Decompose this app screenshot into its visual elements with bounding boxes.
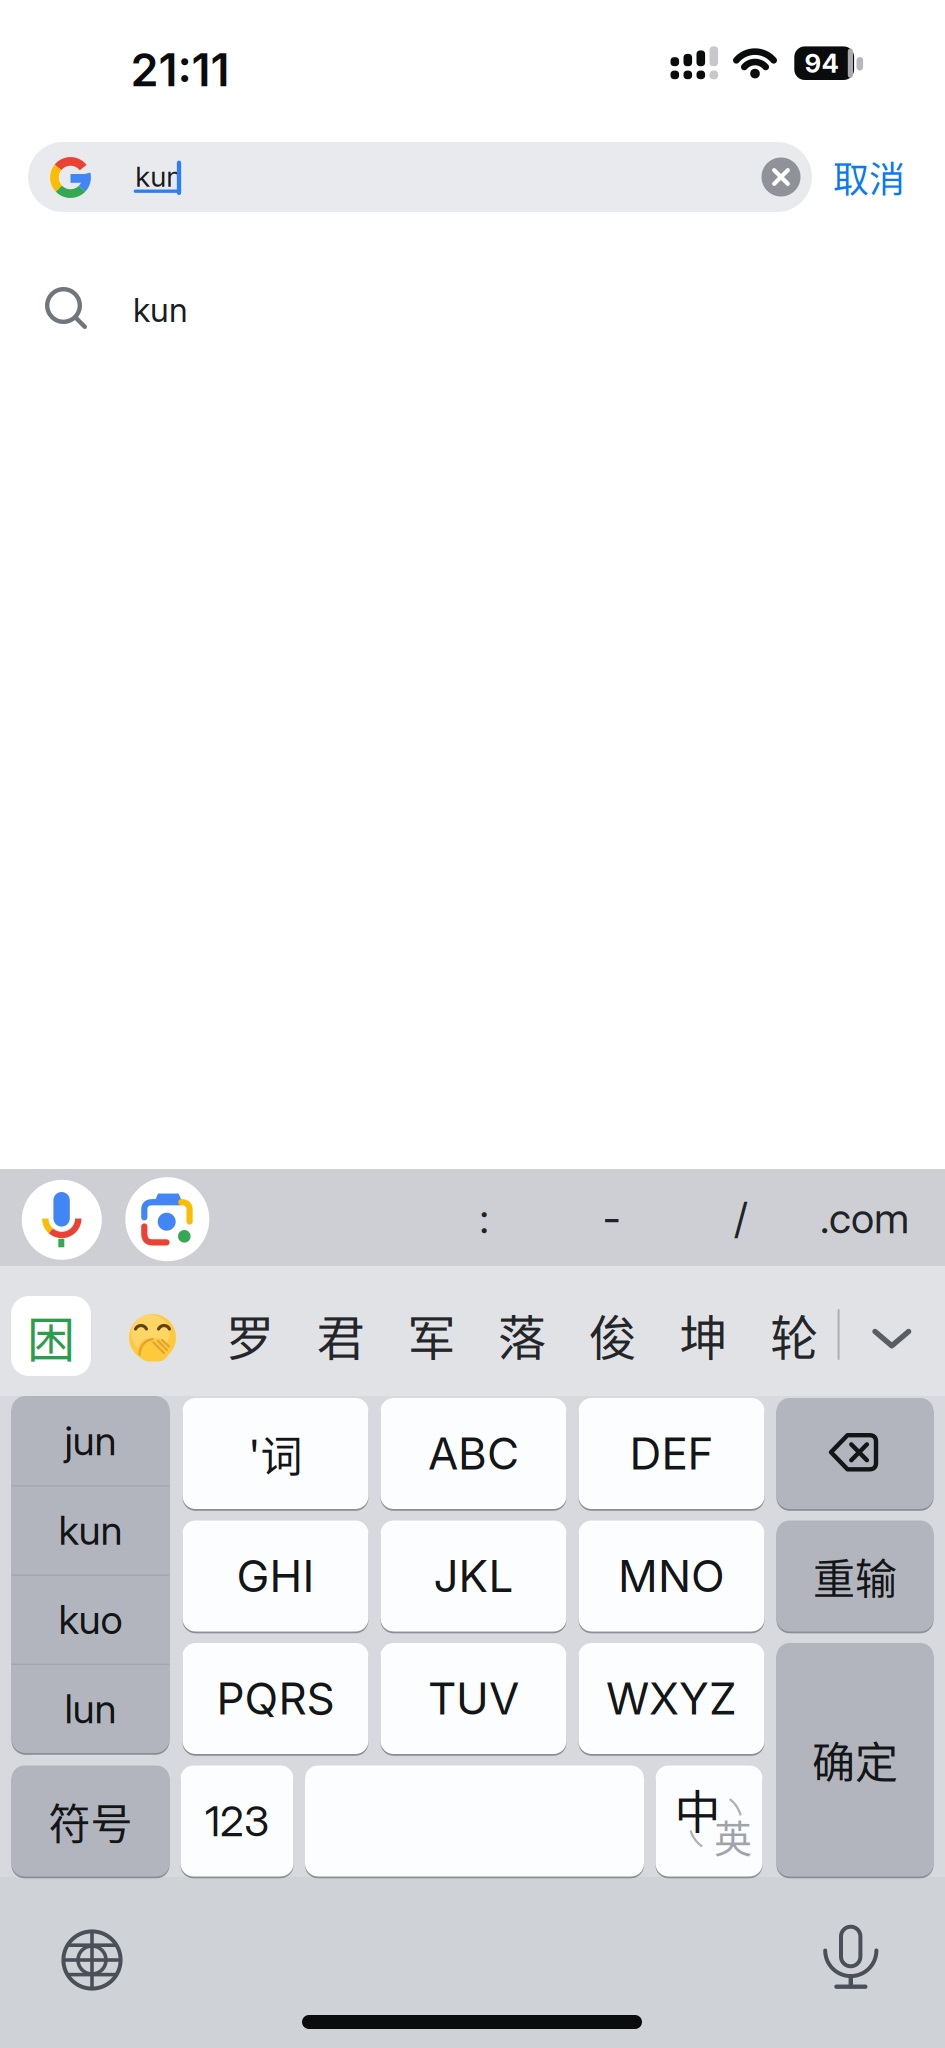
button[interactable]: /	[661, 1171, 821, 1265]
staticText: 英	[714, 1808, 752, 1863]
button[interactable]: 罗	[206, 1274, 294, 1394]
button[interactable]: lun	[11, 1665, 169, 1753]
button[interactable]: 落	[478, 1274, 566, 1394]
button[interactable]: kun	[28, 142, 812, 212]
staticText: 94	[804, 47, 838, 79]
button[interactable]: 困	[11, 1296, 91, 1376]
button[interactable]: Google 智能镜头	[125, 1177, 209, 1261]
staticText: 坤	[679, 1300, 727, 1369]
staticText: 落	[498, 1300, 546, 1369]
staticText: /	[734, 1193, 748, 1243]
staticText: -	[603, 1193, 621, 1243]
staticText: WXYZ	[606, 1672, 737, 1725]
button[interactable]: kun	[11, 1486, 169, 1574]
staticText: .com	[820, 1193, 909, 1243]
staticText: 俊	[589, 1300, 637, 1369]
staticText: 困	[27, 1301, 75, 1371]
button[interactable]: 君	[297, 1274, 385, 1394]
staticText: 轮	[770, 1300, 818, 1369]
button[interactable]: 收起候选栏	[860, 1306, 924, 1370]
button[interactable]: kun	[0, 256, 945, 360]
staticText: '词	[248, 1423, 302, 1484]
staticText: MNO	[618, 1549, 725, 1603]
staticText: PQRS	[216, 1672, 334, 1725]
staticText: TUV	[428, 1672, 519, 1725]
staticText: 君	[317, 1300, 365, 1369]
button[interactable]: '词	[182, 1398, 368, 1509]
staticText: 符号	[48, 1791, 132, 1851]
button[interactable]: 空格	[305, 1765, 644, 1876]
staticText: kun	[135, 160, 182, 193]
staticText: lun	[64, 1684, 116, 1733]
button[interactable]: 听写	[811, 1919, 891, 1999]
staticText: kun	[58, 1506, 122, 1554]
button[interactable]: TUV	[380, 1643, 566, 1754]
button[interactable]: .com	[784, 1171, 944, 1265]
button[interactable]: 符号	[11, 1765, 169, 1876]
staticText: kun	[133, 290, 188, 330]
staticText: 确定	[812, 1729, 898, 1791]
button[interactable]: WXYZ	[578, 1643, 764, 1754]
staticText: jun	[64, 1417, 116, 1465]
staticText: DEF	[629, 1427, 713, 1480]
staticText: 军	[407, 1300, 455, 1369]
button[interactable]: 俊	[569, 1274, 657, 1394]
button[interactable]: jun	[11, 1397, 169, 1485]
button[interactable]: 取消	[816, 142, 922, 212]
button[interactable]: DEF	[578, 1398, 764, 1509]
button[interactable]: PQRS	[182, 1643, 368, 1754]
staticText: 中	[674, 1775, 720, 1842]
button[interactable]: 重输	[776, 1520, 933, 1631]
staticText: 123	[205, 1796, 269, 1846]
staticText: 取消	[833, 151, 905, 203]
button[interactable]: 清除文字	[761, 157, 800, 196]
button[interactable]: -	[532, 1171, 692, 1265]
button[interactable]: 轮	[750, 1274, 838, 1394]
button[interactable]: :	[404, 1171, 564, 1265]
button[interactable]: 删除	[776, 1398, 933, 1509]
button[interactable]: 切换输入法	[52, 1920, 132, 2000]
button[interactable]: 确定	[776, 1643, 933, 1876]
button[interactable]: JKL	[380, 1520, 566, 1631]
staticText: 罗	[226, 1300, 274, 1369]
button[interactable]: ABC	[380, 1398, 566, 1509]
staticText: JKL	[433, 1549, 513, 1603]
button[interactable]: 哈欠表情	[126, 1311, 178, 1363]
staticText: ABC	[428, 1427, 519, 1480]
button[interactable]: 123	[180, 1765, 293, 1876]
button[interactable]: GHI	[182, 1520, 368, 1631]
staticText: GHI	[236, 1549, 314, 1603]
staticText: kuo	[58, 1595, 122, 1644]
button[interactable]: MNO	[578, 1520, 764, 1631]
button[interactable]: 语音搜索	[22, 1180, 102, 1260]
button[interactable]: kuo	[11, 1575, 169, 1663]
button[interactable]: 中	[655, 1765, 762, 1876]
staticText: 21:11	[130, 43, 229, 97]
button[interactable]: 坤	[659, 1274, 747, 1394]
staticText: :	[479, 1193, 488, 1243]
button[interactable]: 军	[387, 1274, 475, 1394]
staticText: 重输	[813, 1546, 897, 1606]
